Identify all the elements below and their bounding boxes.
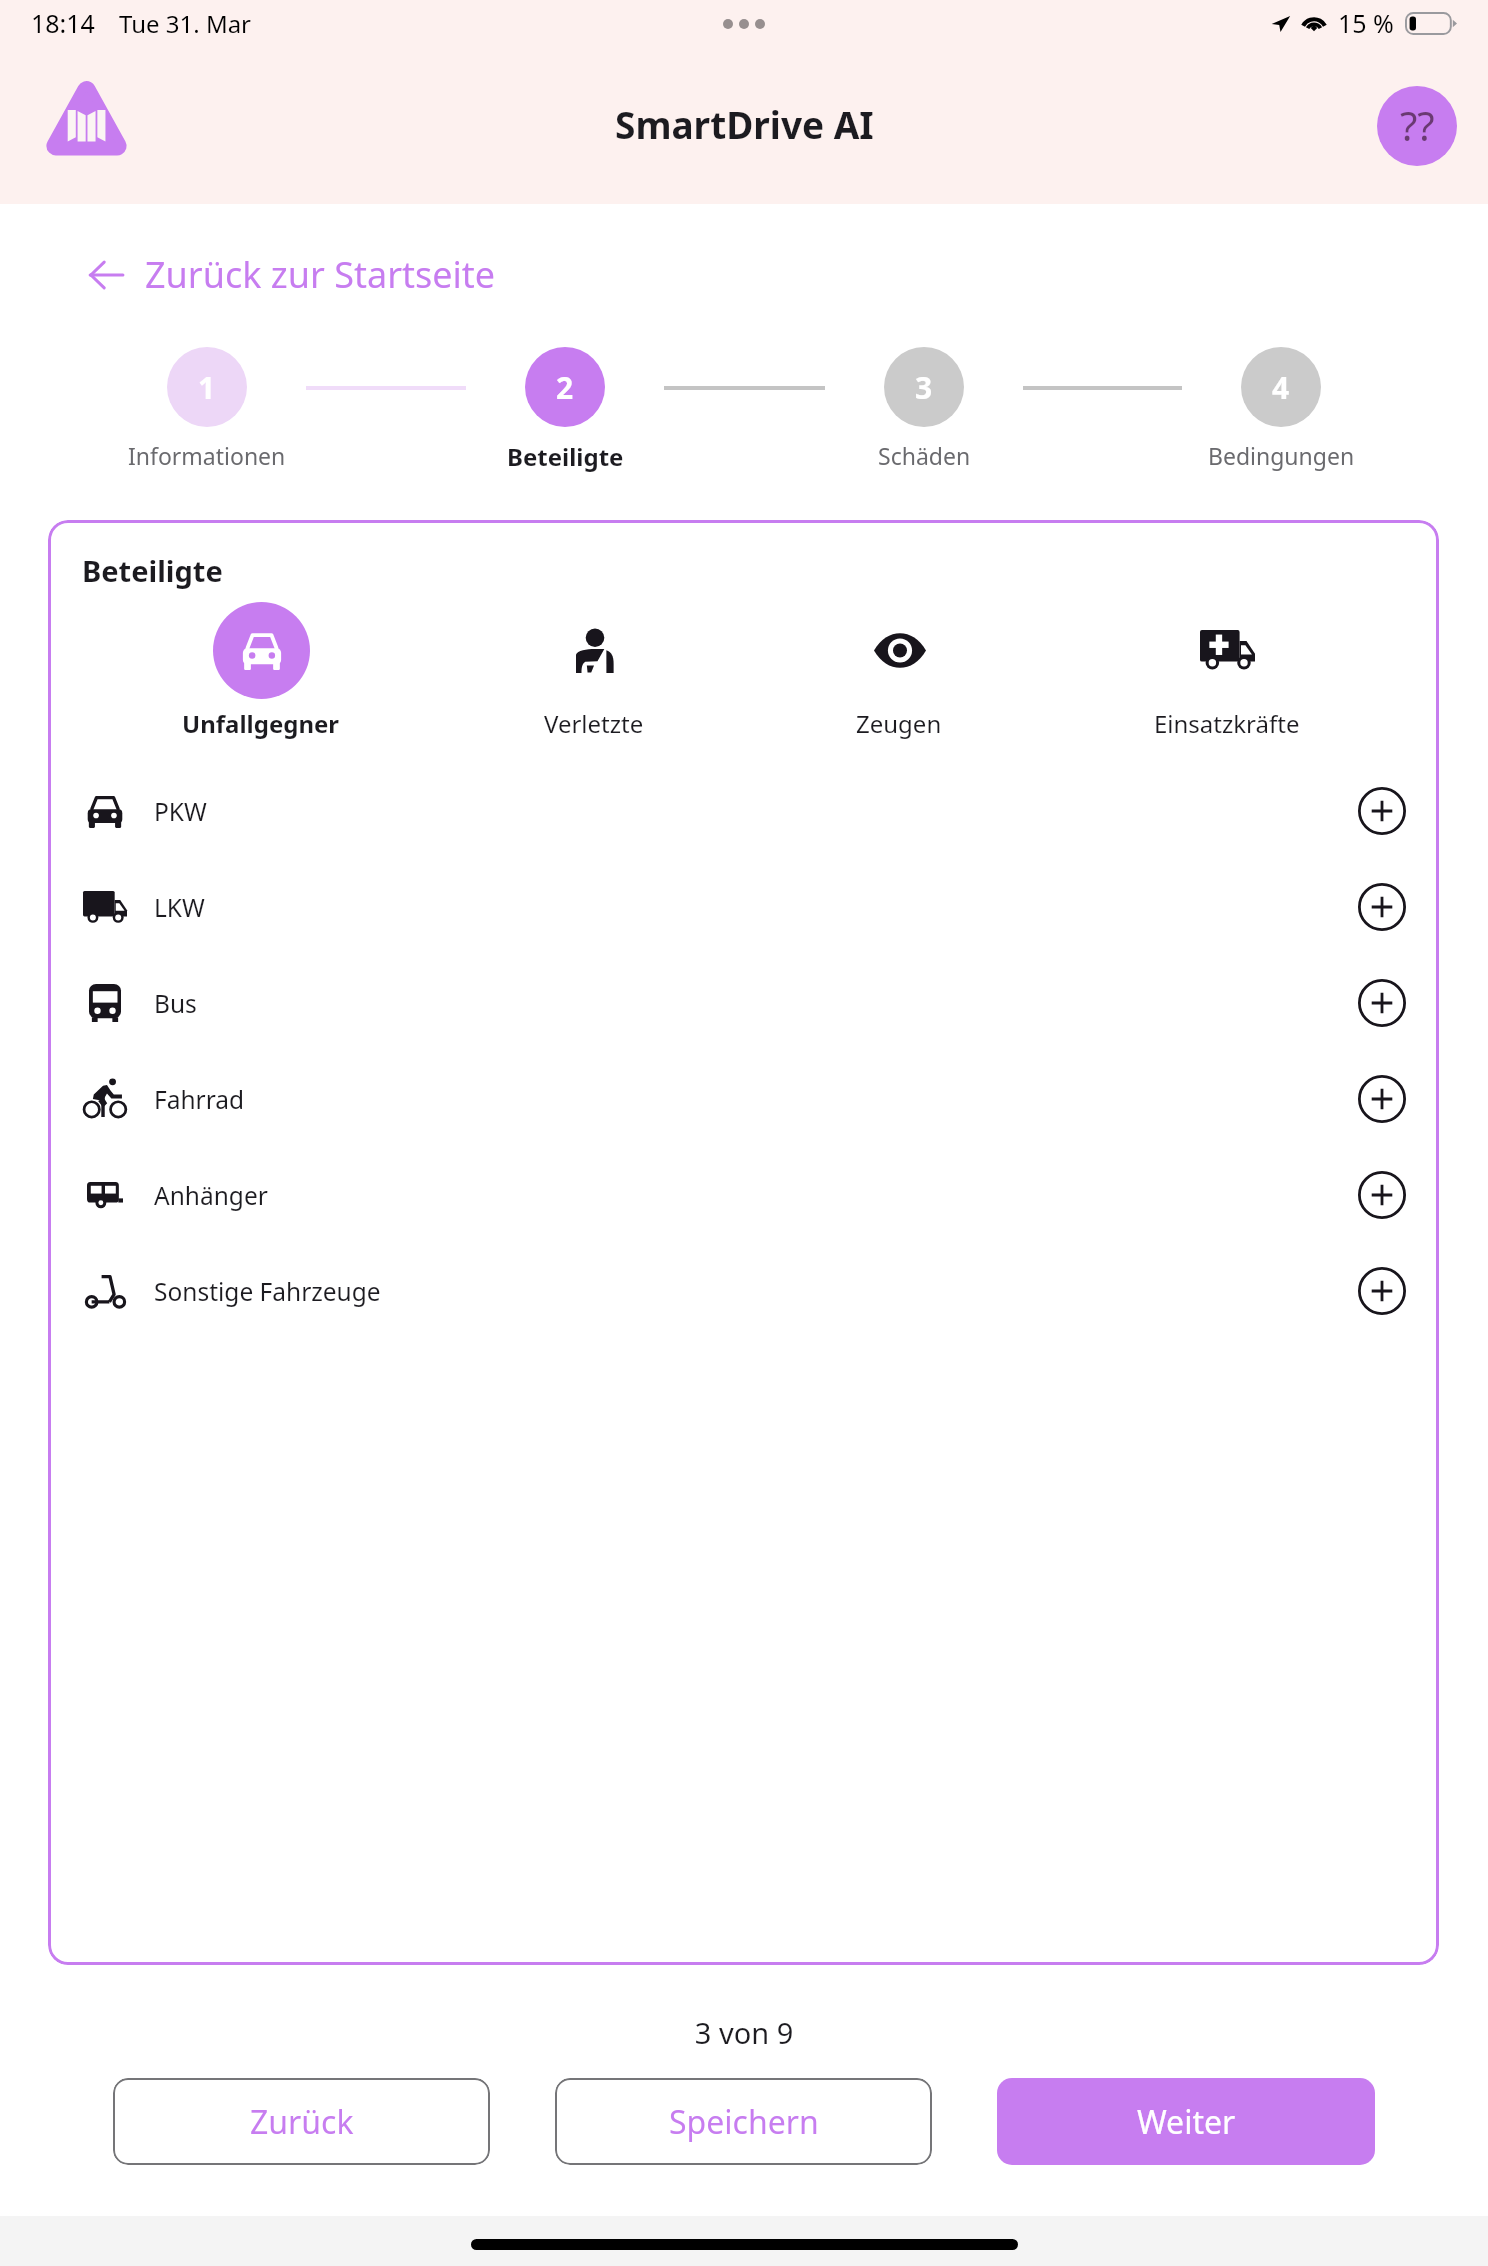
staticText: Verletzte xyxy=(544,707,644,740)
staticText: 4 xyxy=(1272,367,1290,408)
staticText: Zurück zur Startseite xyxy=(145,250,496,299)
button[interactable]: LKW xyxy=(48,859,1439,955)
staticText: Beteiligte xyxy=(507,440,624,473)
button[interactable]: Fahrrad xyxy=(48,1051,1439,1147)
staticText: 1 xyxy=(198,367,216,408)
button[interactable]: Sonstige Fahrzeuge xyxy=(48,1243,1439,1339)
staticText: Einsatzkräfte xyxy=(1154,707,1300,740)
staticText: Unfallgegner xyxy=(182,707,340,740)
staticText: Schäden xyxy=(878,440,971,471)
staticText: SmartDrive AI xyxy=(615,99,874,149)
staticText: 3 von 9 xyxy=(0,2013,1488,2052)
button[interactable]: Zurück zur Startseite xyxy=(84,246,500,303)
button[interactable]: 4 xyxy=(1181,347,1381,471)
staticText: Zurück xyxy=(250,2100,354,2144)
button[interactable]: Add Anhänger xyxy=(1356,1169,1408,1221)
button[interactable]: Bus xyxy=(48,955,1439,1051)
staticText: PKW xyxy=(154,795,207,828)
staticText: 15 % xyxy=(1338,6,1394,40)
button[interactable]: Unfallgegner xyxy=(151,602,371,740)
button[interactable]: Einsatzkräfte xyxy=(1117,602,1337,740)
button[interactable]: Anhänger xyxy=(48,1147,1439,1243)
staticText: Informationen xyxy=(128,440,286,471)
staticText: Speichern xyxy=(669,2100,819,2144)
button[interactable]: Speichern xyxy=(555,2078,932,2165)
button[interactable]: App logo xyxy=(46,79,127,155)
staticText: ?? xyxy=(1400,98,1435,152)
staticText: 2 xyxy=(556,367,574,408)
staticText: 18:14 xyxy=(31,6,95,40)
staticText: 3 xyxy=(915,367,933,408)
button[interactable]: Weiter xyxy=(997,2078,1375,2165)
staticText: Bedingungen xyxy=(1208,440,1355,471)
staticText: Tue 31. Mar xyxy=(119,7,252,40)
button[interactable]: Add PKW xyxy=(1356,785,1408,837)
staticText: LKW xyxy=(154,891,205,924)
staticText: Fahrrad xyxy=(154,1083,245,1116)
staticText: Zeugen xyxy=(856,707,942,740)
button[interactable]: Add Sonstige Fahrzeuge xyxy=(1356,1265,1408,1317)
button[interactable]: 1 xyxy=(107,347,307,471)
button[interactable]: Profile xyxy=(1377,86,1457,166)
staticText: Beteiligte xyxy=(82,551,223,590)
button[interactable]: 3 xyxy=(824,347,1024,471)
button[interactable]: Add LKW xyxy=(1356,881,1408,933)
staticText: Bus xyxy=(154,987,197,1020)
button[interactable]: Add Fahrrad xyxy=(1356,1073,1408,1125)
button[interactable]: Verletzte xyxy=(484,602,704,740)
button[interactable]: Zeugen xyxy=(789,602,1009,740)
button[interactable]: 2 xyxy=(465,347,665,473)
button[interactable]: Zurück xyxy=(113,2078,490,2165)
staticText: Weiter xyxy=(1137,2100,1236,2144)
button[interactable]: PKW xyxy=(48,763,1439,859)
button[interactable]: Add Bus xyxy=(1356,977,1408,1029)
staticText: Anhänger xyxy=(154,1179,268,1212)
staticText: Sonstige Fahrzeuge xyxy=(154,1275,381,1308)
